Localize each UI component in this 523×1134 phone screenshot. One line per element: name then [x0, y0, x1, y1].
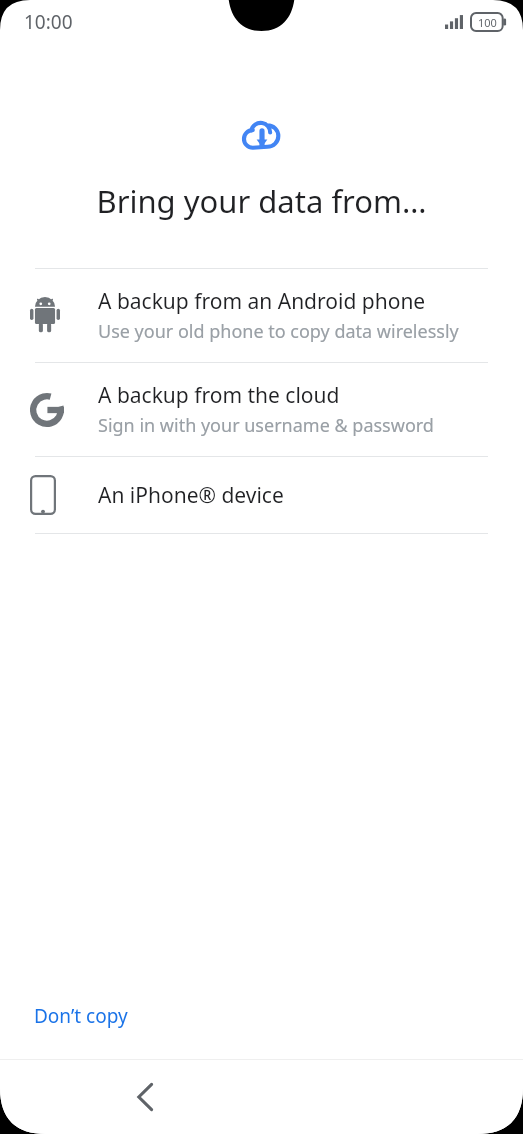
staticText: 10:00 — [24, 9, 73, 35]
button[interactable]: A backup from the cloud — [0, 363, 523, 456]
staticText: An iPhone® device — [98, 481, 284, 510]
staticText: Use your old phone to copy data wireless… — [98, 319, 459, 344]
button[interactable]: Back — [118, 1070, 172, 1124]
staticText: Bring your data from… — [0, 180, 523, 222]
staticText: Sign in with your username & password — [98, 413, 434, 438]
button[interactable]: An iPhone® device — [0, 457, 523, 533]
staticText: Don’t copy — [34, 1003, 128, 1029]
button[interactable]: Don’t copy — [20, 995, 142, 1037]
staticText: A backup from the cloud — [98, 381, 340, 410]
staticText: A backup from an Android phone — [98, 287, 426, 316]
button[interactable]: A backup from an Android phone — [0, 269, 523, 362]
staticText: 100 — [478, 15, 497, 30]
